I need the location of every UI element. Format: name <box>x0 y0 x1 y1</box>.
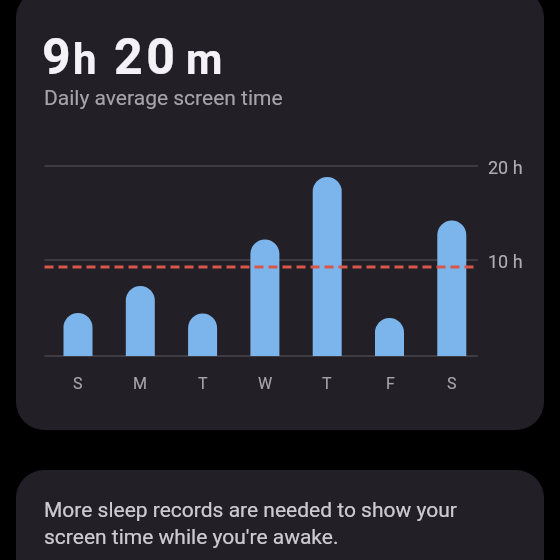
staticText: T <box>322 374 332 393</box>
staticText: More sleep records are needed to show yo… <box>44 498 457 550</box>
staticText: Daily average screen time <box>44 86 283 111</box>
staticText: T <box>198 374 208 393</box>
staticText: W <box>258 374 273 393</box>
staticText: S <box>447 374 457 393</box>
staticText: F <box>386 374 395 393</box>
staticText: M <box>133 374 147 393</box>
staticText: 10 h <box>488 251 523 272</box>
staticText: 20 h <box>488 157 523 178</box>
staticText: 9 <box>42 28 71 87</box>
staticText: 20 <box>114 28 179 87</box>
staticText: h <box>73 35 97 84</box>
staticText: S <box>73 374 83 393</box>
staticText: m <box>186 35 223 84</box>
